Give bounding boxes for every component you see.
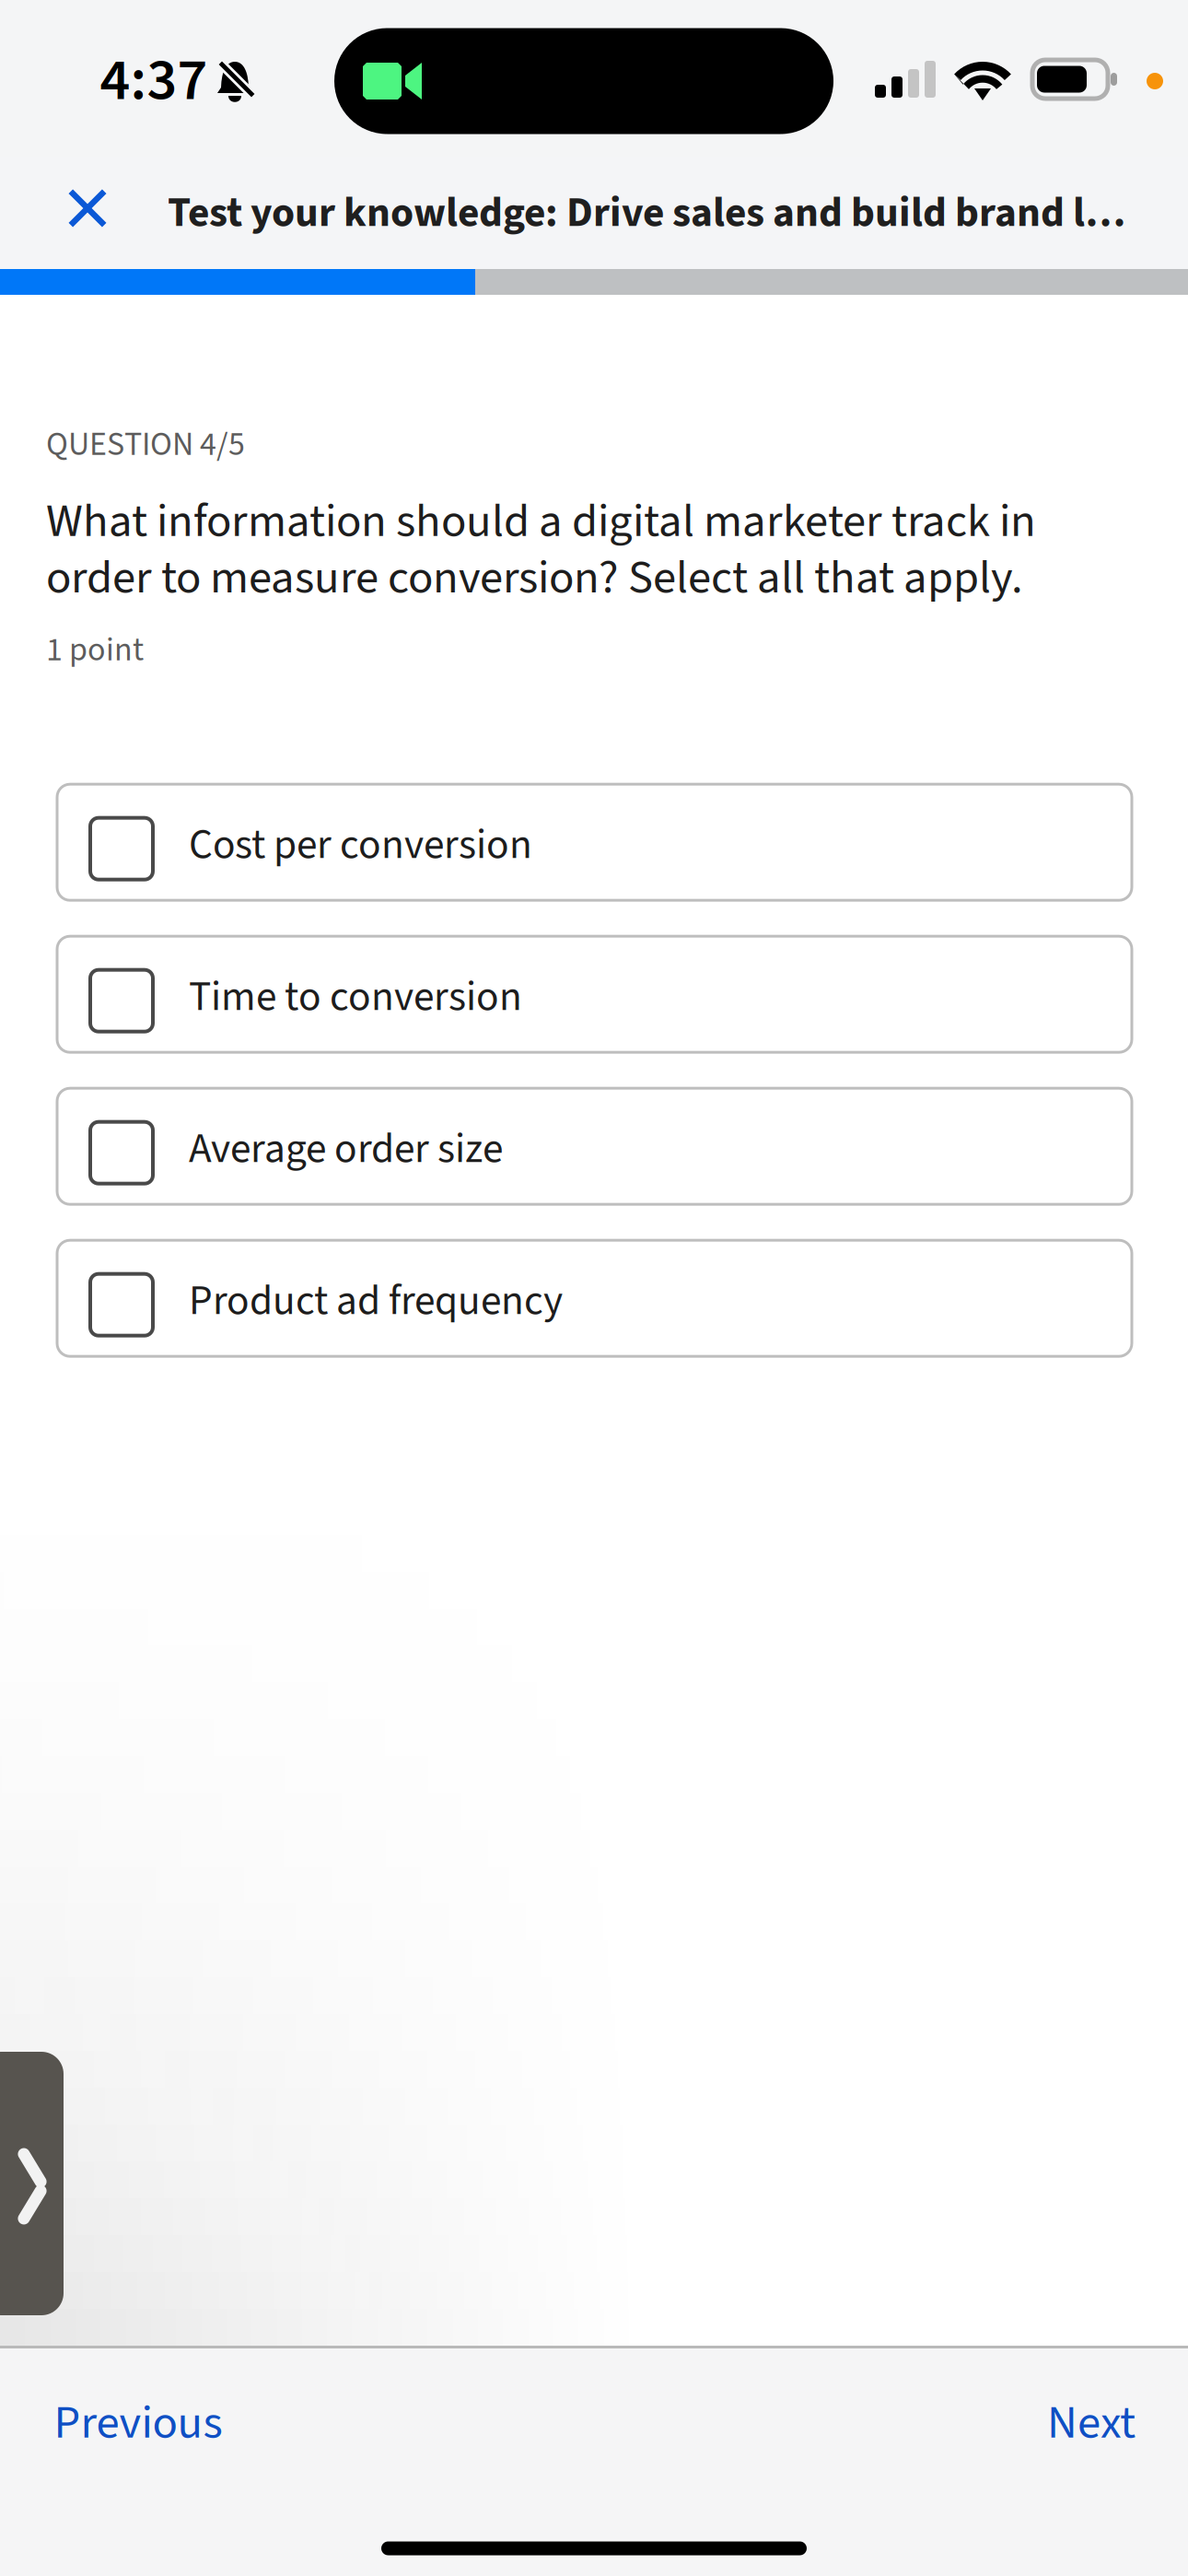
button[interactable]: Product ad frequency	[57, 1240, 1132, 1356]
staticText: Product ad frequency	[189, 1271, 563, 1331]
staticText: Next	[1047, 2390, 1136, 2456]
staticText: Previous	[54, 2390, 222, 2456]
staticText: 4:37	[100, 38, 208, 122]
button[interactable]: Cost per conversion	[57, 784, 1132, 900]
staticText: What information should a digital market…	[46, 493, 1036, 606]
button[interactable]: Close	[28, 152, 147, 264]
button[interactable]: Previous	[17, 2360, 259, 2486]
staticText: Time to conversion	[189, 967, 522, 1027]
button[interactable]: Time to conversion	[57, 936, 1132, 1052]
staticText: Test your knowledge: Drive sales and bui…	[168, 183, 1125, 243]
button[interactable]: Next	[1010, 2360, 1172, 2486]
button[interactable]: Open navigation drawer	[0, 2052, 64, 2315]
staticText: QUESTION 4/5	[46, 421, 245, 468]
staticText: Cost per conversion	[189, 815, 532, 875]
button[interactable]: Average order size	[57, 1088, 1132, 1204]
staticText: Average order size	[189, 1119, 503, 1179]
staticText: 1 point	[46, 626, 144, 674]
